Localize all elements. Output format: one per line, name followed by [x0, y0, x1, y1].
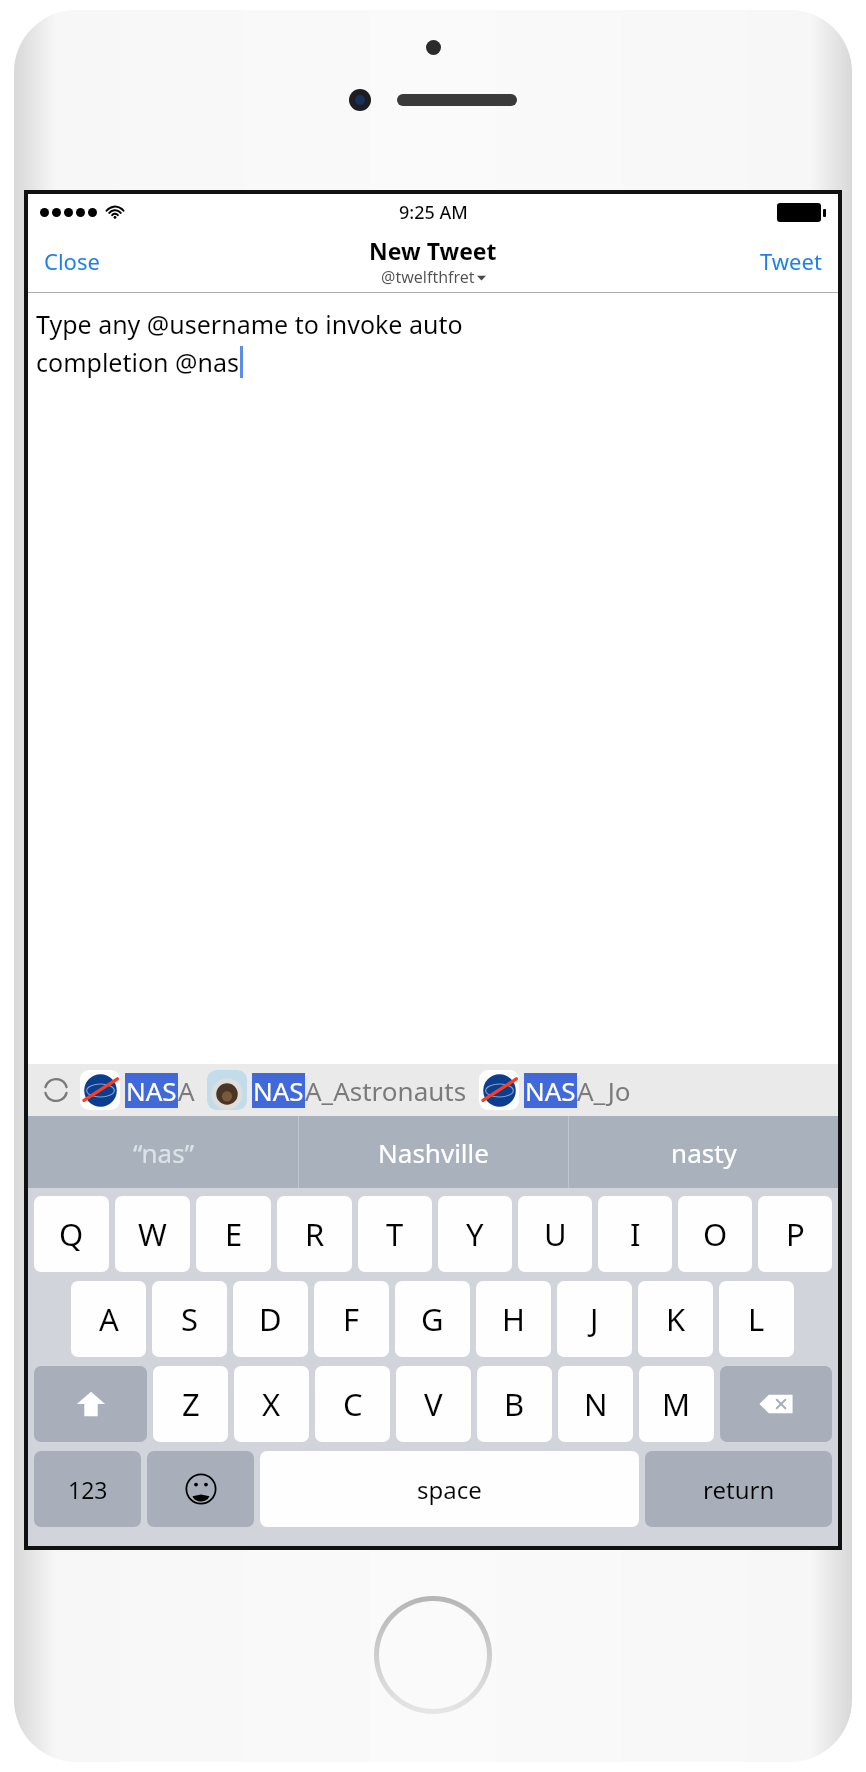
staticText: Y — [466, 1213, 484, 1255]
staticText: M — [662, 1383, 691, 1425]
staticText: @twelfthfret — [381, 266, 475, 288]
staticText: 9:25 AM — [399, 200, 468, 225]
button[interactable]: K — [638, 1281, 713, 1357]
button[interactable]: NAS — [80, 1070, 195, 1110]
button[interactable]: S — [152, 1281, 227, 1357]
button[interactable]: A — [71, 1281, 146, 1357]
staticText: O — [703, 1213, 728, 1255]
button[interactable]: New Tweet — [369, 235, 497, 288]
button[interactable]: L — [719, 1281, 794, 1357]
button[interactable]: O — [678, 1196, 752, 1272]
button[interactable]: Backspace — [720, 1366, 832, 1442]
button[interactable]: Tweet — [744, 236, 838, 286]
button[interactable]: P — [758, 1196, 832, 1272]
staticText: space — [417, 1473, 482, 1506]
button[interactable]: Nashville — [299, 1116, 568, 1188]
button[interactable]: nasty — [569, 1116, 838, 1188]
staticText: New Tweet — [369, 235, 497, 266]
button[interactable]: J — [557, 1281, 632, 1357]
staticText: T — [386, 1213, 404, 1255]
button[interactable]: Z — [153, 1366, 228, 1442]
staticText: A — [178, 1073, 195, 1108]
button[interactable]: I — [598, 1196, 672, 1272]
staticText: B — [504, 1383, 525, 1425]
button[interactable]: Y — [438, 1196, 512, 1272]
staticText: A_Jo — [577, 1073, 631, 1108]
button[interactable]: V — [396, 1366, 471, 1442]
staticText: P — [786, 1213, 805, 1255]
staticText: NAS — [253, 1073, 304, 1108]
staticText: “nas” — [133, 1135, 194, 1170]
button[interactable]: Refresh — [38, 1072, 74, 1108]
staticText: Type any @username to invoke auto — [36, 307, 463, 341]
button[interactable]: E — [196, 1196, 271, 1272]
staticText: NAS — [525, 1073, 576, 1108]
button[interactable]: space — [260, 1451, 639, 1527]
staticText: Nashville — [378, 1135, 489, 1170]
staticText: L — [748, 1298, 765, 1340]
staticText: I — [630, 1213, 641, 1255]
staticText: V — [424, 1383, 443, 1425]
staticText: D — [259, 1298, 282, 1340]
button[interactable]: G — [395, 1281, 470, 1357]
staticText: Z — [182, 1383, 200, 1425]
button[interactable]: X — [234, 1366, 309, 1442]
button[interactable]: Home — [374, 1596, 492, 1714]
button[interactable]: D — [233, 1281, 308, 1357]
button[interactable]: NAS — [479, 1070, 631, 1110]
staticText: return — [703, 1473, 775, 1506]
button[interactable]: W — [115, 1196, 190, 1272]
button[interactable]: F — [314, 1281, 389, 1357]
button[interactable]: N — [558, 1366, 633, 1442]
staticText: A — [99, 1298, 119, 1340]
staticText: Close — [44, 246, 100, 276]
staticText: N — [584, 1383, 608, 1425]
button[interactable]: NAS — [207, 1070, 467, 1110]
staticText: A_Astronauts — [305, 1073, 467, 1108]
button[interactable]: H — [476, 1281, 551, 1357]
button[interactable]: M — [639, 1366, 714, 1442]
button[interactable]: return — [645, 1451, 832, 1527]
staticText: 123 — [68, 1474, 108, 1505]
button[interactable]: Q — [34, 1196, 109, 1272]
staticText: nasty — [671, 1135, 737, 1170]
staticText: U — [544, 1213, 567, 1255]
staticText: F — [343, 1298, 360, 1340]
button[interactable]: T — [358, 1196, 432, 1272]
button[interactable]: U — [518, 1196, 592, 1272]
staticText: C — [343, 1383, 363, 1425]
staticText: NAS — [126, 1073, 177, 1108]
staticText: R — [305, 1213, 325, 1255]
button[interactable]: Close — [28, 236, 116, 286]
staticText: completion @nas — [36, 345, 239, 379]
staticText: E — [225, 1213, 243, 1255]
button[interactable]: Shift — [34, 1366, 147, 1442]
button[interactable]: B — [477, 1366, 552, 1442]
button[interactable]: 123 — [34, 1451, 141, 1527]
staticText: X — [262, 1383, 281, 1425]
staticText: W — [138, 1213, 167, 1255]
staticText: S — [181, 1298, 199, 1340]
button[interactable]: Emoji — [147, 1451, 254, 1527]
button[interactable]: R — [277, 1196, 352, 1272]
staticText: G — [421, 1298, 444, 1340]
staticText: K — [666, 1298, 686, 1340]
staticText: H — [502, 1298, 525, 1340]
button[interactable]: “nas” — [28, 1116, 298, 1188]
staticText: Q — [59, 1213, 84, 1255]
button[interactable]: C — [315, 1366, 390, 1442]
staticText: J — [590, 1298, 599, 1340]
staticText: Tweet — [760, 246, 822, 276]
